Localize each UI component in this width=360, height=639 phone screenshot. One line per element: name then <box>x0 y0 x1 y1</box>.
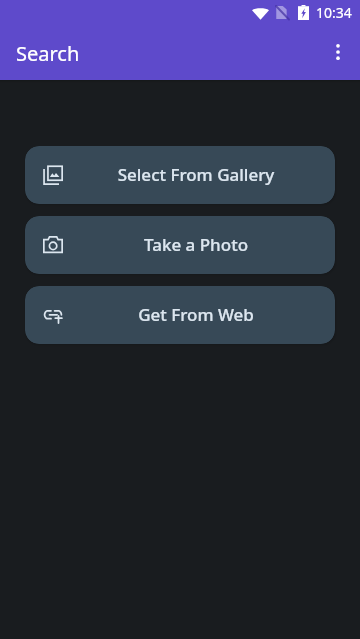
staticText: Select From Gallery <box>63 163 329 186</box>
button[interactable]: More options <box>314 28 360 76</box>
button[interactable]: Select From Gallery <box>25 146 335 204</box>
button[interactable]: Get From Web <box>25 286 335 344</box>
staticText: Get From Web <box>63 303 329 326</box>
staticText: Search <box>16 40 80 67</box>
button[interactable]: Take a Photo <box>25 216 335 274</box>
staticText: 10:34 <box>316 3 352 22</box>
staticText: Take a Photo <box>63 233 329 256</box>
